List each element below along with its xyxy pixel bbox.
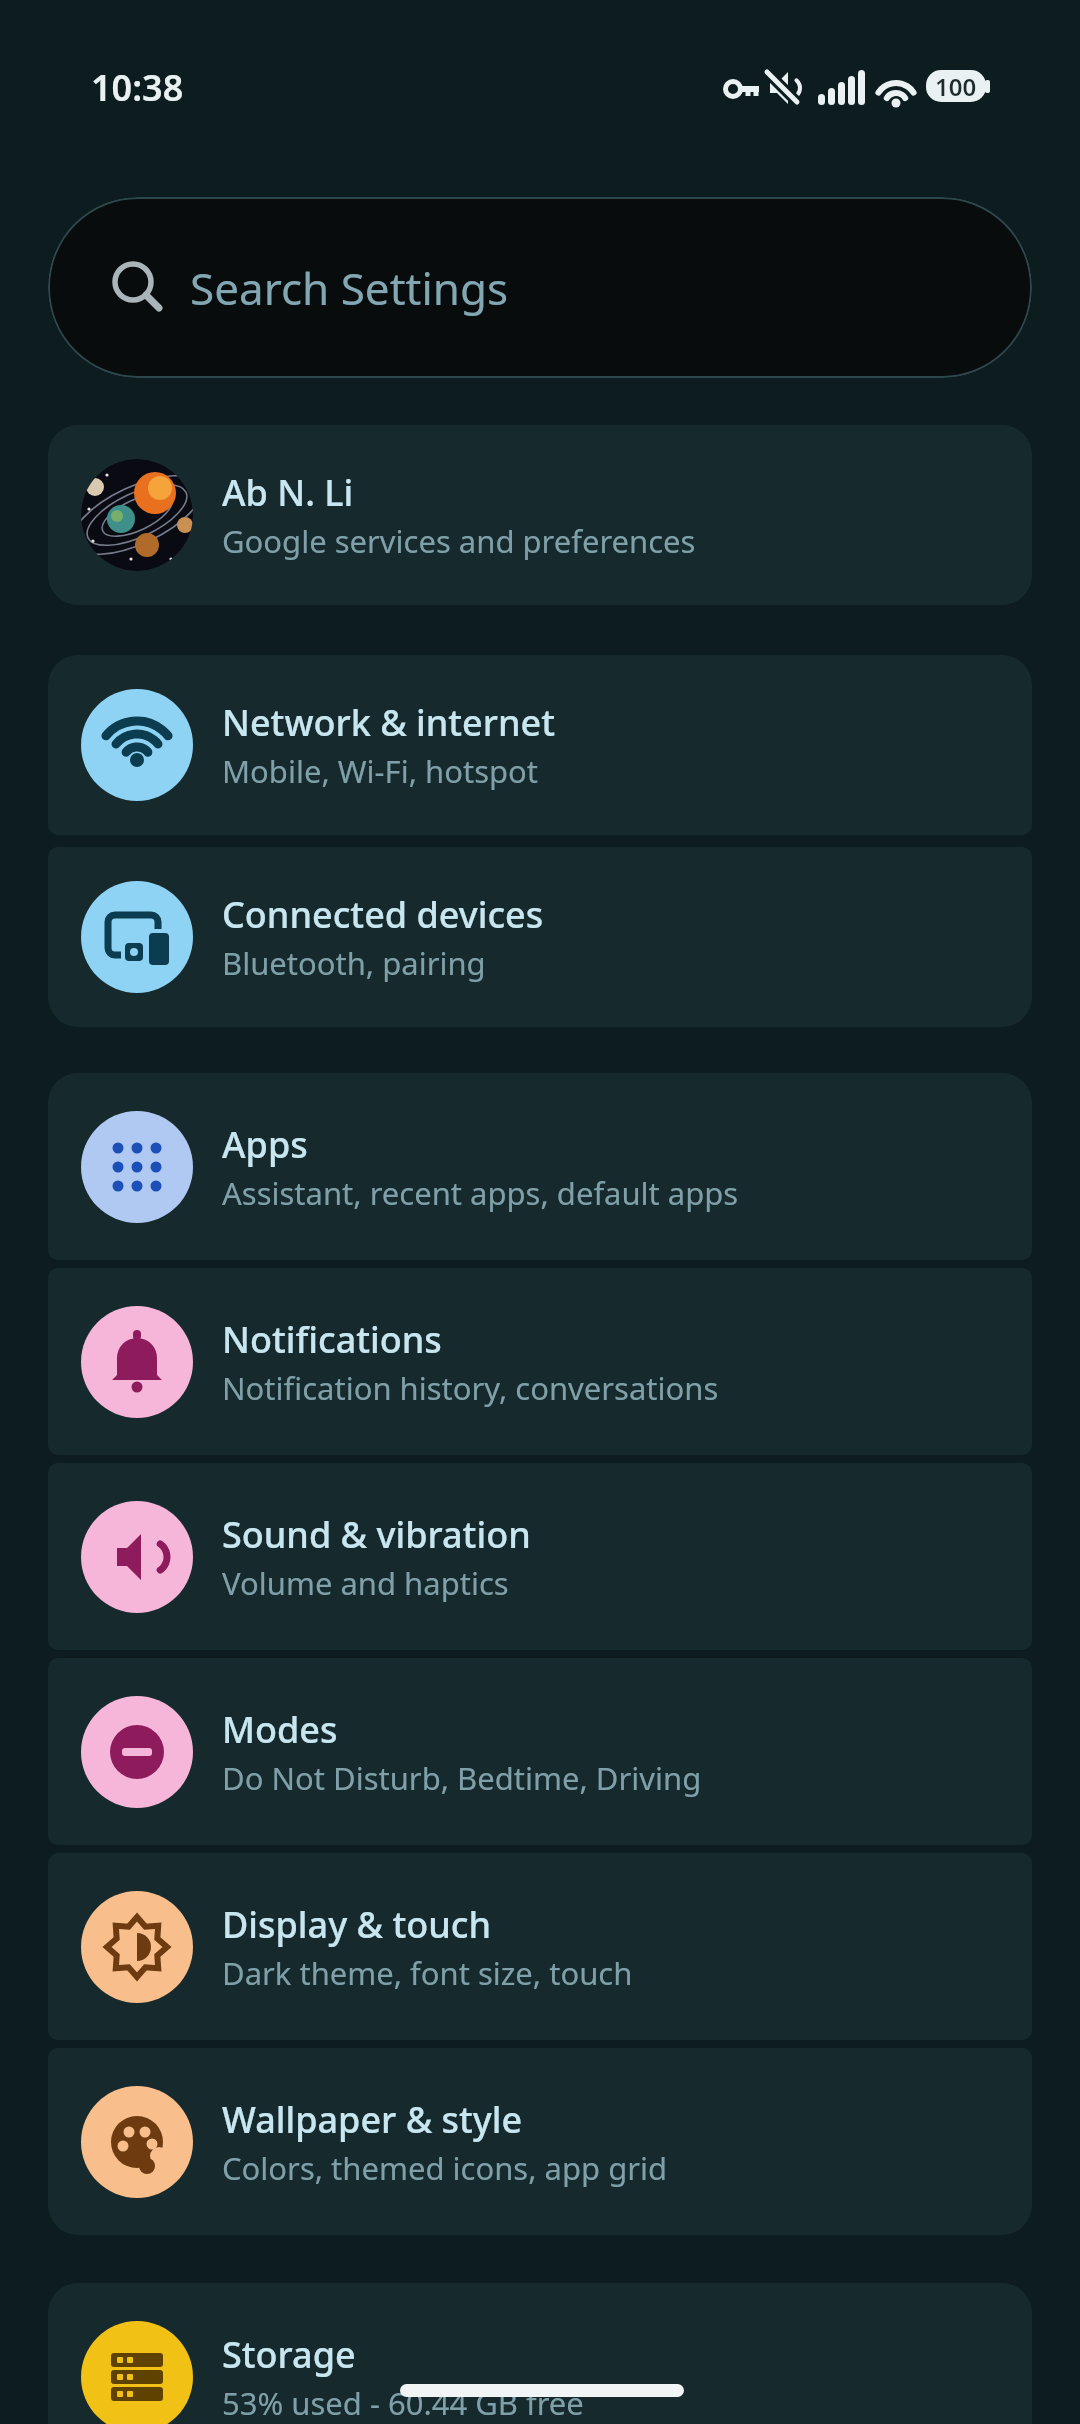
button[interactable]: Search Settings [48, 197, 1032, 378]
staticText: Search Settings [190, 258, 509, 318]
staticText: Wallpaper & style [222, 2095, 523, 2144]
staticText: 53% used - 60.44 GB free [222, 2382, 584, 2424]
button[interactable]: Network & internet [48, 655, 1032, 835]
staticText: Sound & vibration [222, 1510, 531, 1559]
button[interactable]: Storage [48, 2283, 1032, 2424]
button[interactable]: Apps [48, 1073, 1032, 1260]
staticText: Notification history, conversations [222, 1367, 719, 1409]
staticText: Apps [222, 1120, 308, 1169]
staticText: Google services and preferences [222, 520, 696, 562]
staticText: Dark theme, font size, touch [222, 1952, 633, 1994]
staticText: 10:38 [91, 63, 184, 112]
button[interactable]: Wallpaper & style [48, 2048, 1032, 2235]
staticText: Colors, themed icons, app grid [222, 2147, 668, 2189]
button[interactable]: Notifications [48, 1268, 1032, 1455]
button[interactable]: Display & touch [48, 1853, 1032, 2040]
button[interactable]: Connected devices [48, 847, 1032, 1027]
staticText: Bluetooth, pairing [222, 942, 486, 984]
staticText: Modes [222, 1705, 338, 1754]
button[interactable]: Ab N. Li [48, 425, 1032, 605]
staticText: Ab N. Li [222, 468, 354, 517]
staticText: Notifications [222, 1315, 442, 1364]
staticText: 100 [935, 70, 977, 102]
staticText: Volume and haptics [222, 1562, 509, 1604]
staticText: Do Not Disturb, Bedtime, Driving [222, 1757, 702, 1799]
staticText: Storage [222, 2330, 356, 2379]
button[interactable]: Modes [48, 1658, 1032, 1845]
staticText: Connected devices [222, 890, 544, 939]
button[interactable]: Sound & vibration [48, 1463, 1032, 1650]
staticText: Mobile, Wi-Fi, hotspot [222, 750, 539, 792]
staticText: Network & internet [222, 698, 556, 747]
staticText: Display & touch [222, 1900, 492, 1949]
staticText: Assistant, recent apps, default apps [222, 1172, 739, 1214]
